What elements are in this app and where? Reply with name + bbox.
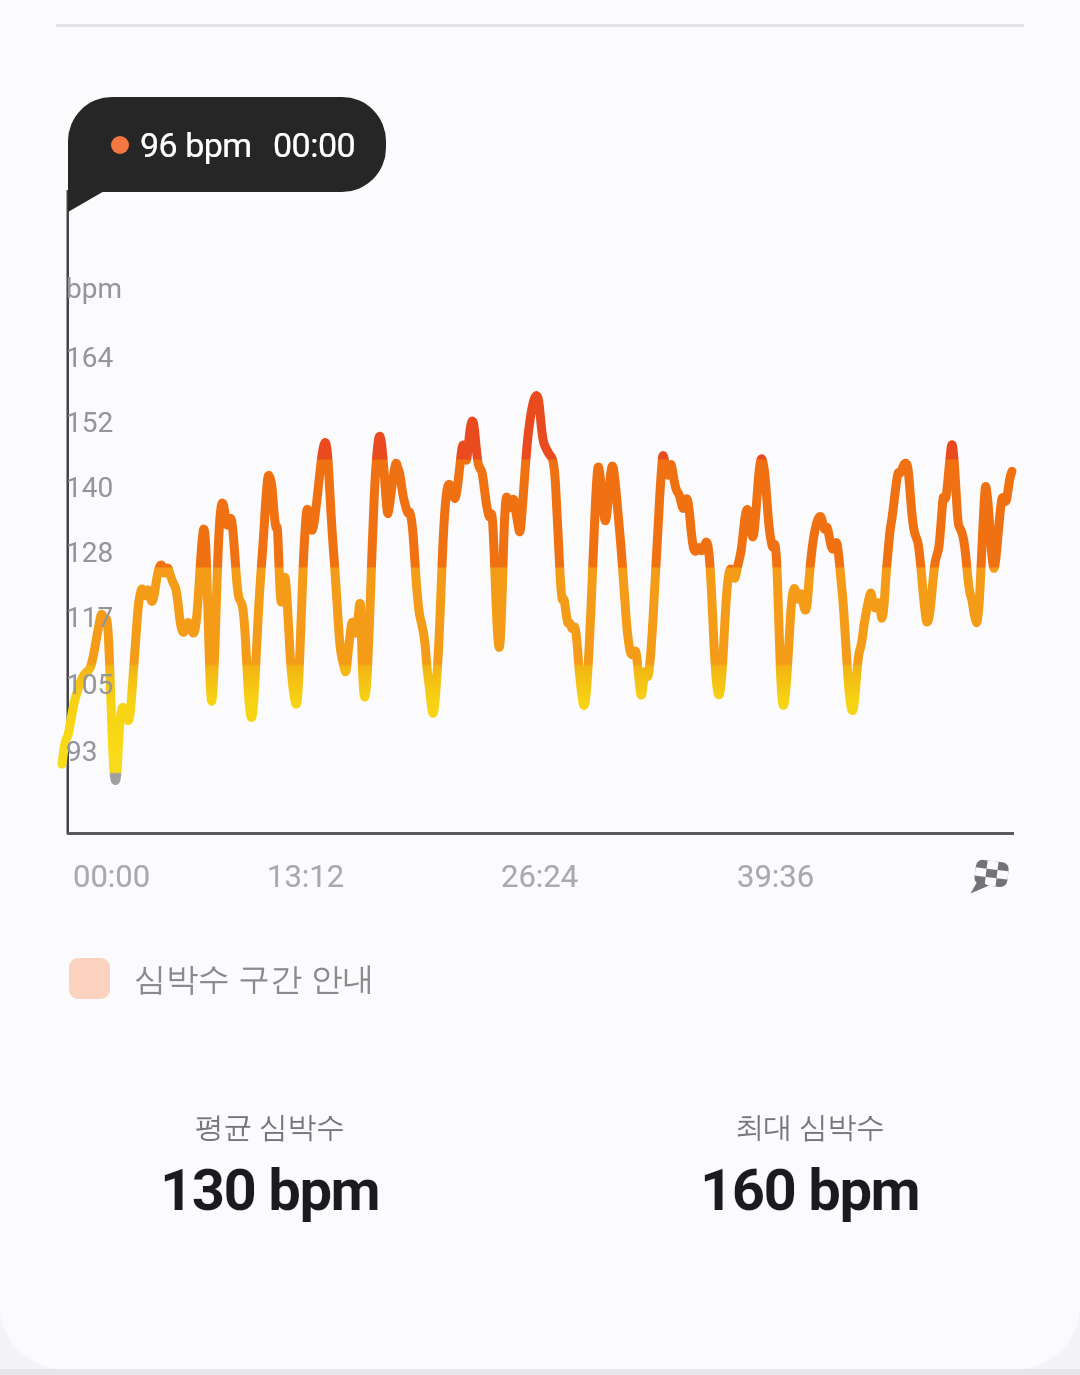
staticText: 93 bbox=[66, 735, 98, 768]
staticText: 105 bbox=[66, 668, 114, 701]
staticText: 평균 심박수 bbox=[195, 1106, 345, 1146]
staticText: 39:36 bbox=[737, 858, 815, 894]
staticText: 26:24 bbox=[501, 858, 579, 894]
button[interactable]: 심박수 구간 안내 bbox=[69, 956, 375, 1000]
staticText: 13:12 bbox=[267, 858, 345, 894]
staticText: 152 bbox=[66, 406, 114, 439]
staticText: 00:00 bbox=[73, 858, 151, 894]
staticText: 130 bpm bbox=[160, 1156, 380, 1224]
staticText: 117 bbox=[66, 601, 114, 634]
staticText: 164 bbox=[66, 341, 114, 374]
staticText: bpm bbox=[66, 272, 122, 305]
staticText: 최대 심박수 bbox=[735, 1106, 885, 1146]
staticText: 160 bpm bbox=[700, 1156, 920, 1224]
staticText: 00:00 bbox=[273, 125, 356, 165]
button[interactable]: 96 bpm bbox=[68, 97, 386, 192]
staticText: 심박수 구간 안내 bbox=[134, 956, 375, 1000]
staticText: 140 bbox=[66, 471, 114, 504]
staticText: 96 bpm bbox=[140, 125, 252, 165]
staticText: 128 bbox=[66, 536, 114, 569]
